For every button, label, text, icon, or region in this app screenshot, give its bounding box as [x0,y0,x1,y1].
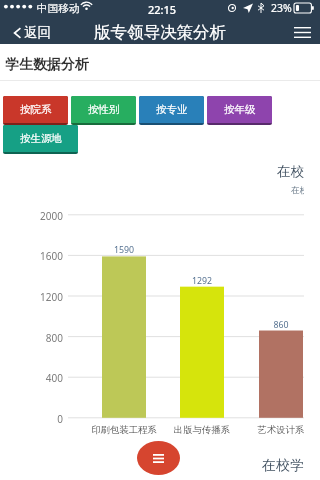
staticText: 1200 [0,290,63,304]
staticText: 版专领导决策分析 [94,22,226,43]
staticText: 学生数据分析 [5,56,89,74]
button[interactable]: 返回 [0,21,63,44]
staticText: 800 [0,331,63,345]
staticText: 1600 [0,249,63,263]
staticText: 在校学生人数统计 [277,163,304,180]
staticText: 1292 [172,275,232,287]
staticText: 按性别 [88,103,120,116]
staticText: 艺术设计系 [231,424,304,436]
staticText: 860 [251,319,304,331]
staticText: 2000 [0,209,63,223]
staticText: 出版与传播系 [152,424,252,436]
button[interactable]: 按年级 [207,96,272,125]
staticText: 返回 [24,24,51,41]
button[interactable]: 按生源地 [3,125,78,154]
staticText: 印刷包装工程系 [74,424,174,436]
staticText: 中国移动 [37,2,80,15]
staticText: 按专业 [156,103,188,116]
button[interactable]: 按性别 [71,96,136,125]
button[interactable]: 按院系 [3,96,68,125]
staticText: 23% [271,1,292,15]
staticText: 按院系 [20,103,52,116]
button[interactable]: 按专业 [139,96,204,125]
staticText: 1590 [94,244,154,256]
button[interactable]: Menu options [137,441,180,475]
staticText: 400 [0,371,63,385]
button[interactable]: Menu [285,23,320,42]
staticText: 按年级 [224,103,256,116]
staticText: 22:15 [2,2,320,17]
staticText: 在校学生人数统计 [262,457,304,475]
staticText: 在校学生人数 [291,185,304,196]
staticText: 0 [0,412,63,426]
staticText: 按生源地 [20,132,62,145]
